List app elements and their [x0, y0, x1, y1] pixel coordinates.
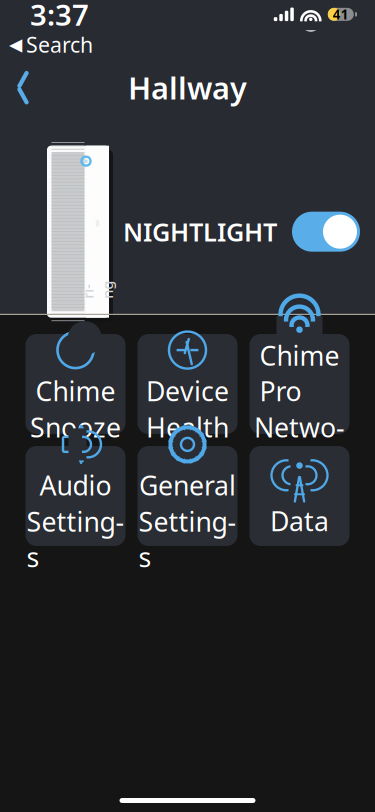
- button[interactable]: Audio: [25, 446, 125, 546]
- button[interactable]: Chime Pro: [249, 334, 349, 434]
- staticText: Settings: [138, 504, 236, 575]
- button[interactable]: Back: [0, 66, 46, 110]
- staticText: ◀: [9, 35, 22, 54]
- staticText: General: [139, 467, 236, 503]
- staticText: Hallway: [128, 67, 247, 108]
- button[interactable]: Nightlight on: [292, 212, 360, 252]
- staticText: 41: [333, 5, 349, 23]
- staticText: Settings: [26, 504, 124, 575]
- button[interactable]: Chime: [25, 334, 125, 434]
- staticText: 3:37: [30, 0, 89, 34]
- staticText: Health: [146, 409, 229, 445]
- staticText: Device: [146, 373, 229, 408]
- staticText: Data: [270, 503, 329, 539]
- staticText: Audio: [39, 467, 111, 503]
- staticText: Network: [254, 409, 345, 480]
- staticText: Search: [26, 30, 93, 59]
- button[interactable]: Data: [249, 446, 349, 546]
- button[interactable]: Device: [137, 334, 237, 434]
- staticText: Chime Pro: [259, 338, 339, 408]
- button[interactable]: ◀: [0, 29, 93, 59]
- staticText: NIGHTLIGHT: [123, 215, 277, 248]
- staticText: Snooze: [30, 409, 121, 445]
- staticText: ring: [88, 270, 106, 309]
- staticText: Chime: [35, 373, 115, 408]
- button[interactable]: General: [137, 446, 237, 546]
